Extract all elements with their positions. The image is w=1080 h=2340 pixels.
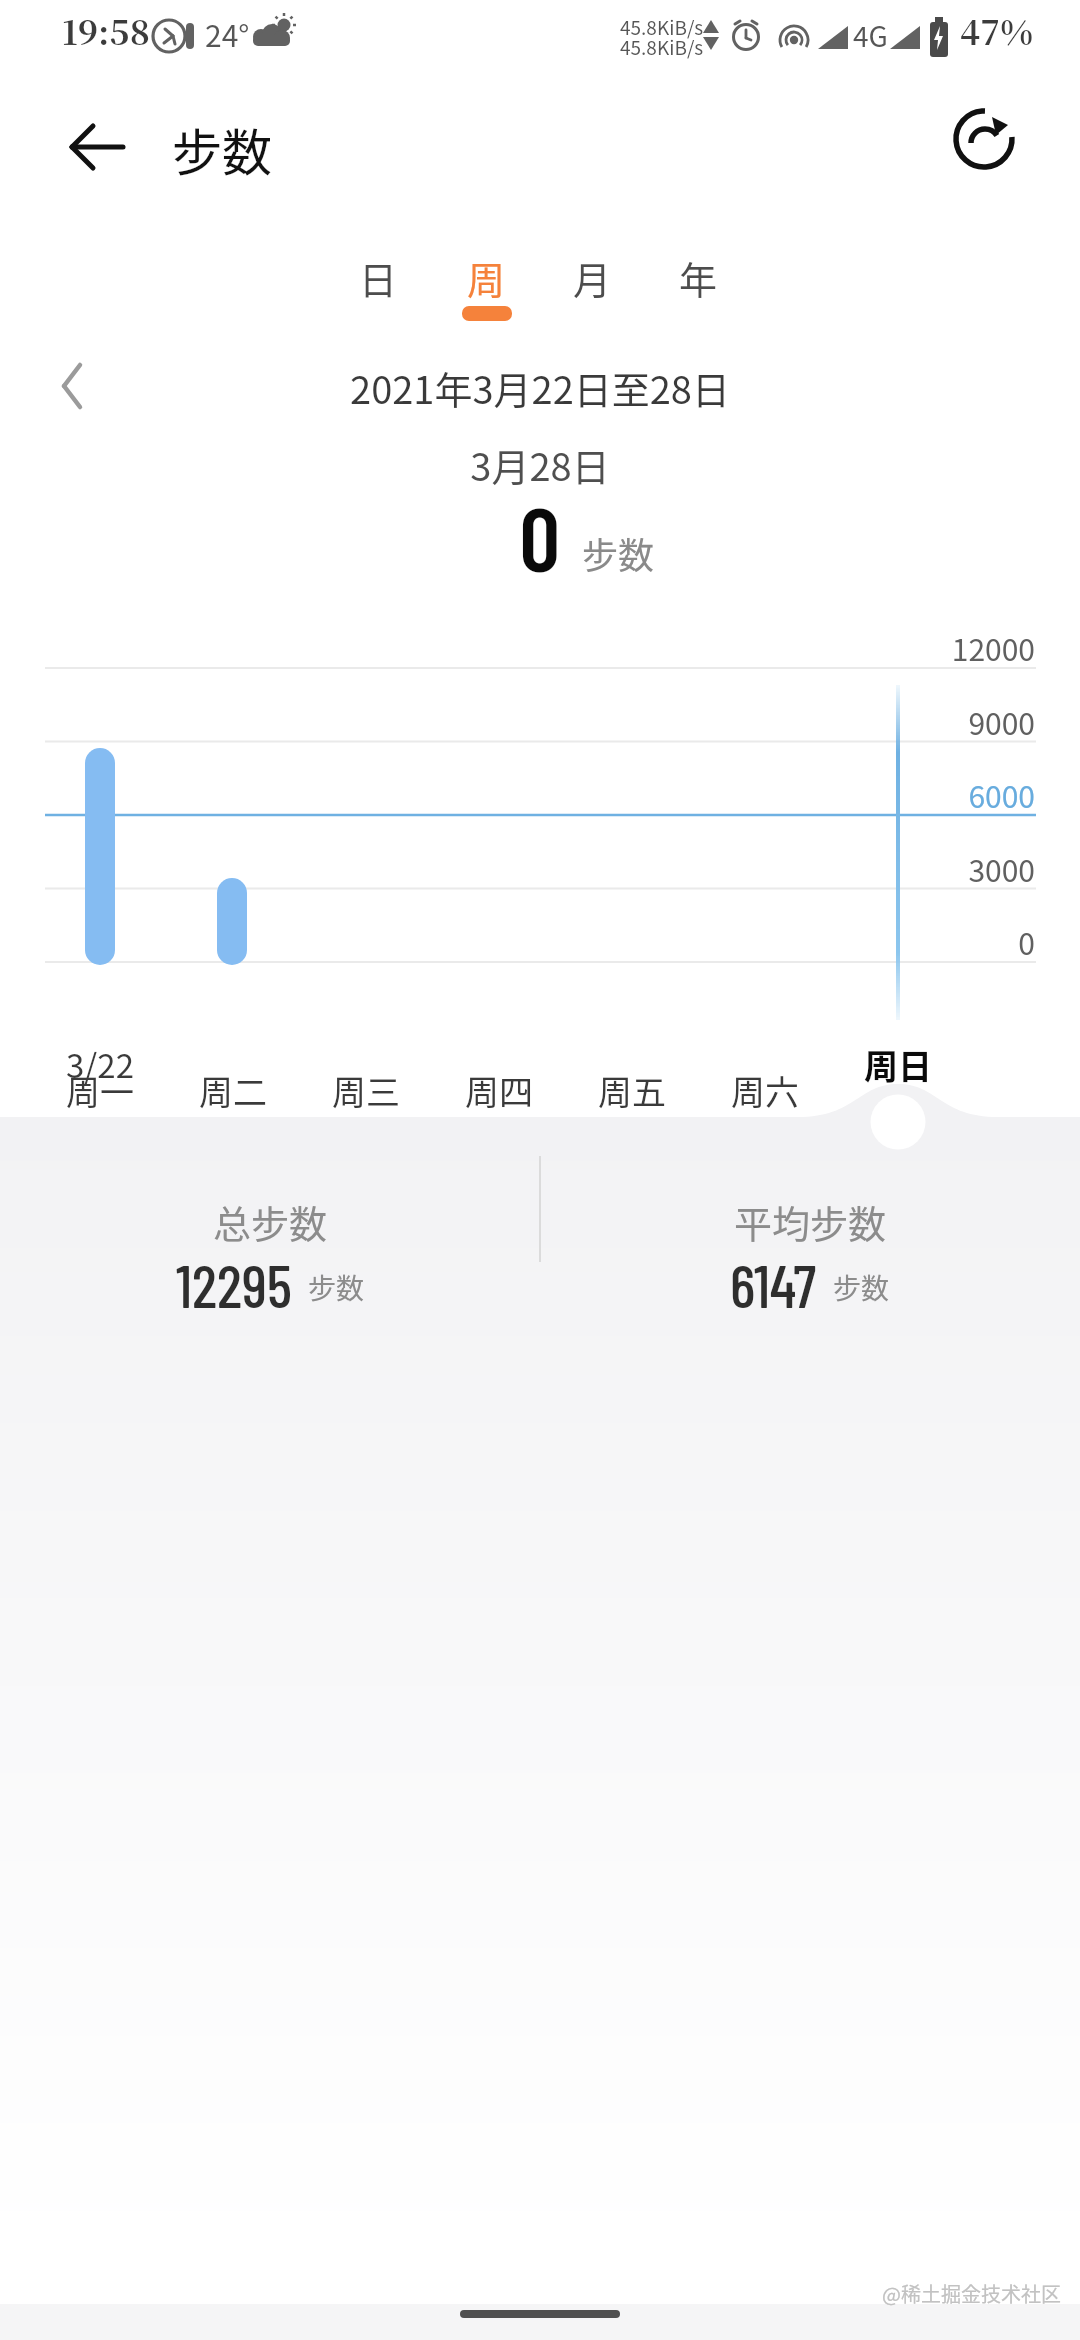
button[interactable]: 周 bbox=[434, 244, 538, 328]
staticText: 周五 bbox=[572, 1066, 692, 1115]
staticText: 周二 bbox=[173, 1066, 293, 1115]
staticText: 19:58 bbox=[62, 6, 150, 55]
staticText: 6000 bbox=[835, 773, 1035, 816]
staticText: 45.8KiB/s bbox=[620, 33, 704, 61]
staticText: 周六 bbox=[705, 1066, 825, 1115]
staticText: 步数 bbox=[172, 113, 272, 185]
staticText: 3/22 bbox=[40, 1040, 160, 1088]
button[interactable] bbox=[40, 352, 104, 420]
staticText: 4G bbox=[853, 15, 888, 56]
staticText: 周三 bbox=[306, 1066, 426, 1115]
staticText: 月 bbox=[540, 250, 644, 305]
staticText: 9000 bbox=[835, 700, 1035, 743]
staticText: 0 bbox=[835, 920, 1035, 963]
staticText: 步数 bbox=[308, 1267, 365, 1308]
staticText: 3000 bbox=[835, 847, 1035, 890]
staticText: 周一 bbox=[40, 1066, 160, 1115]
staticText: 周四 bbox=[439, 1066, 559, 1115]
staticText: 0 bbox=[360, 482, 560, 590]
button[interactable] bbox=[52, 106, 140, 186]
button[interactable]: 月 bbox=[540, 244, 644, 328]
staticText: @稀土掘金技术社区 bbox=[882, 2279, 1061, 2308]
button[interactable]: 日 bbox=[326, 244, 430, 328]
staticText: 年 bbox=[646, 250, 750, 305]
staticText: 12295 bbox=[176, 1248, 292, 1320]
staticText: 平均步数 bbox=[660, 1194, 960, 1249]
staticText: 12000 bbox=[835, 626, 1035, 669]
button[interactable] bbox=[948, 102, 1020, 174]
staticText: 总步数 bbox=[120, 1194, 420, 1249]
staticText: 3月28日 bbox=[0, 437, 1080, 492]
staticText: 6147 bbox=[730, 1248, 817, 1320]
staticText: 日 bbox=[326, 250, 430, 305]
staticText: 2021年3月22日至28日 bbox=[0, 360, 1080, 415]
staticText: 24° bbox=[205, 12, 250, 55]
staticText: 45.8KiB/s bbox=[620, 13, 704, 41]
staticText: 步数 bbox=[582, 527, 655, 579]
staticText: 47% bbox=[960, 6, 1033, 55]
staticText: 周 bbox=[434, 250, 538, 305]
staticText: 步数 bbox=[833, 1267, 890, 1308]
staticText: 周日 bbox=[838, 1040, 958, 1089]
button[interactable]: 年 bbox=[646, 244, 750, 328]
